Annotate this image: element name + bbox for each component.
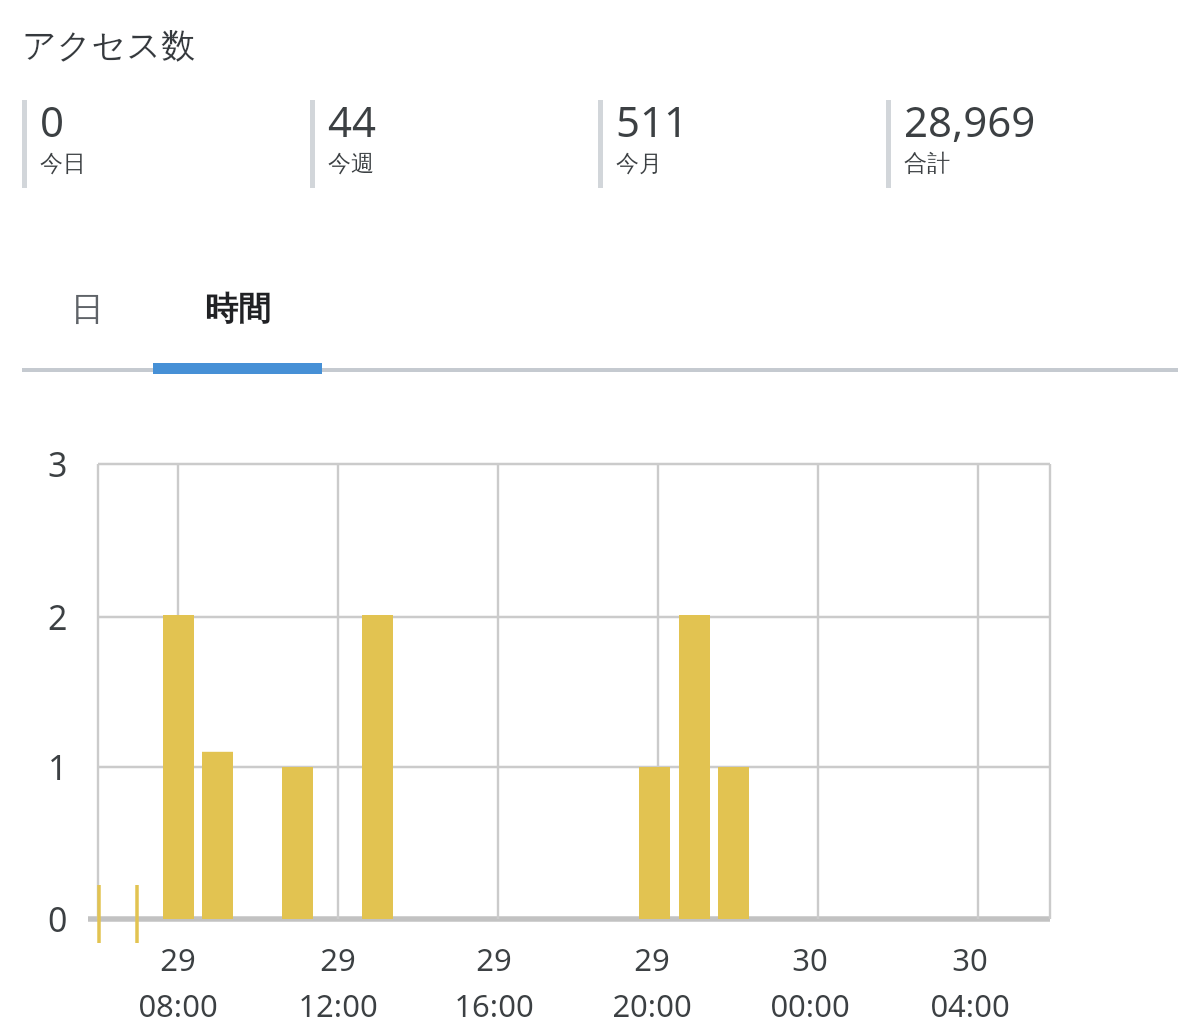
staticText: 30 bbox=[792, 938, 828, 980]
staticText: 29 bbox=[476, 938, 512, 980]
staticText: 2 bbox=[48, 594, 68, 640]
staticText: 29 bbox=[160, 938, 196, 980]
button[interactable]: 日 bbox=[22, 270, 153, 370]
staticText: 20:00 bbox=[612, 984, 692, 1026]
staticText: 1 bbox=[48, 744, 68, 790]
button[interactable]: 44 bbox=[310, 100, 590, 188]
staticText: 0 bbox=[40, 92, 65, 149]
staticText: 3 bbox=[48, 441, 68, 487]
staticText: 0 bbox=[48, 896, 68, 942]
button[interactable]: 511 bbox=[598, 100, 878, 188]
staticText: 時間 bbox=[205, 288, 271, 330]
staticText: 29 bbox=[634, 938, 670, 980]
button[interactable]: 0 bbox=[22, 100, 302, 188]
staticText: 日 bbox=[71, 288, 104, 330]
staticText: 04:00 bbox=[930, 984, 1010, 1026]
staticText: 30 bbox=[952, 938, 988, 980]
staticText: 16:00 bbox=[454, 984, 534, 1026]
button[interactable]: 28,969 bbox=[886, 100, 1166, 188]
button[interactable]: 時間 bbox=[153, 270, 322, 370]
staticText: 511 bbox=[616, 92, 689, 149]
staticText: 今日 bbox=[40, 149, 86, 178]
staticText: 28,969 bbox=[904, 92, 1036, 149]
staticText: 今月 bbox=[616, 149, 662, 178]
staticText: 44 bbox=[328, 92, 377, 149]
staticText: 00:00 bbox=[770, 984, 850, 1026]
staticText: 08:00 bbox=[138, 984, 218, 1026]
staticText: 今週 bbox=[328, 149, 374, 178]
staticText: 29 bbox=[320, 938, 356, 980]
staticText: 12:00 bbox=[298, 984, 378, 1026]
staticText: アクセス数 bbox=[22, 24, 196, 67]
staticText: 合計 bbox=[904, 149, 950, 178]
